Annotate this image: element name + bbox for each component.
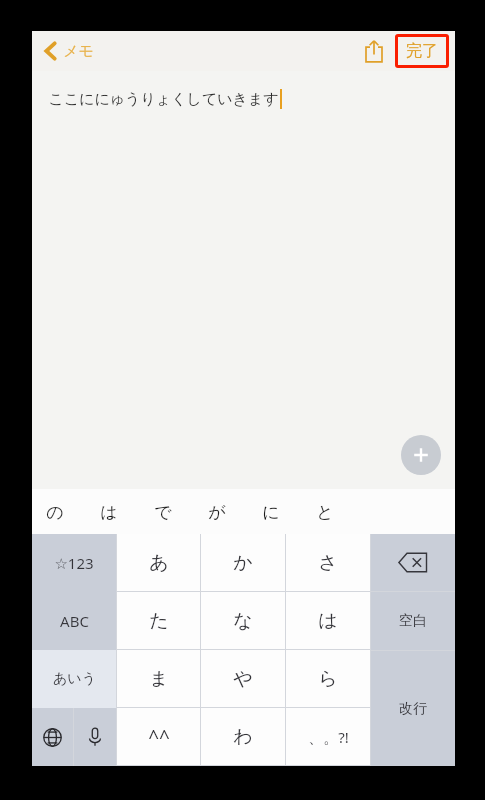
staticText: は — [100, 502, 118, 523]
button[interactable]: は — [100, 492, 154, 532]
staticText: た — [149, 609, 169, 633]
button[interactable]: 空白 — [371, 592, 455, 650]
staticText: ☆123 — [54, 553, 94, 573]
staticText: あいう — [53, 670, 96, 688]
staticText: に — [262, 502, 280, 523]
button[interactable]: 完了 — [395, 34, 449, 68]
button[interactable]: ま — [117, 650, 200, 707]
staticText: が — [208, 502, 226, 523]
staticText: は — [318, 609, 338, 633]
button[interactable]: さ — [286, 534, 370, 591]
button[interactable]: な — [201, 592, 285, 649]
staticText: わ — [233, 725, 253, 749]
staticText: ^^ — [148, 724, 170, 750]
button[interactable]: 改行 — [371, 651, 455, 766]
button[interactable]: Share — [357, 34, 391, 68]
staticText: メモ — [63, 42, 94, 61]
button[interactable]: の — [46, 492, 100, 532]
button[interactable]: メモ — [40, 37, 98, 65]
button[interactable]: ABC — [32, 592, 116, 650]
staticText: と — [316, 502, 334, 523]
button[interactable]: あいう — [32, 650, 116, 708]
button[interactable]: Change keyboard — [32, 708, 73, 766]
staticText: 完了 — [406, 41, 438, 61]
staticText: で — [154, 502, 172, 523]
staticText: の — [46, 502, 64, 523]
button[interactable]: は — [286, 592, 370, 649]
button[interactable]: Add — [401, 435, 441, 475]
button[interactable]: Dictation — [74, 708, 116, 766]
staticText: 空白 — [399, 612, 427, 630]
button[interactable]: ^^ — [117, 708, 200, 765]
button[interactable]: や — [201, 650, 285, 707]
button[interactable]: Delete — [371, 534, 455, 591]
staticText: あ — [149, 551, 169, 575]
staticText: ま — [149, 667, 169, 691]
staticText: か — [233, 551, 253, 575]
button[interactable]: た — [117, 592, 200, 649]
staticText: 改行 — [399, 700, 427, 718]
staticText: 、。?! — [308, 727, 349, 747]
button[interactable]: ら — [286, 650, 370, 707]
button[interactable]: か — [201, 534, 285, 591]
button[interactable]: ☆123 — [32, 534, 116, 592]
button[interactable]: あ — [117, 534, 200, 591]
staticText: や — [233, 667, 253, 691]
staticText: さ — [318, 551, 338, 575]
button[interactable]: と — [316, 492, 370, 532]
staticText: ら — [318, 667, 338, 691]
staticText: ABC — [60, 611, 89, 631]
button[interactable]: わ — [201, 708, 285, 765]
button[interactable]: で — [154, 492, 208, 532]
button[interactable]: に — [262, 492, 316, 532]
button[interactable]: が — [208, 492, 262, 532]
button[interactable]: 、。?! — [286, 708, 370, 765]
staticText: な — [233, 609, 253, 633]
staticText: ここににゅうりょくしていきます — [48, 90, 279, 109]
